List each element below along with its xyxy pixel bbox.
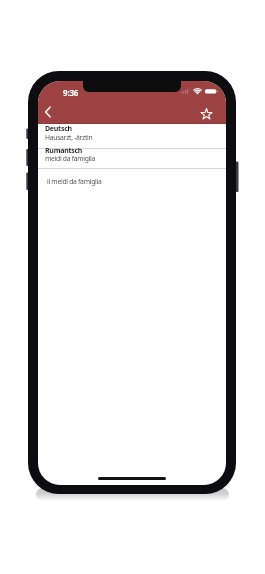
- staticText: Rumantsch: [45, 146, 83, 156]
- staticText: il meidi da famiglia: [47, 177, 102, 186]
- staticText: 9:36: [63, 87, 79, 98]
- button[interactable]: Rumantsch: [38, 148, 226, 168]
- button[interactable]: [197, 105, 216, 124]
- button[interactable]: [40, 103, 56, 120]
- button[interactable]: il meidi da famiglia: [38, 169, 226, 187]
- staticText: Deutsch: [45, 124, 72, 134]
- button[interactable]: Deutsch: [38, 124, 226, 148]
- staticText: meidi da famiglia: [45, 154, 96, 163]
- staticText: Hausarzt, -ärztin: [45, 133, 93, 142]
